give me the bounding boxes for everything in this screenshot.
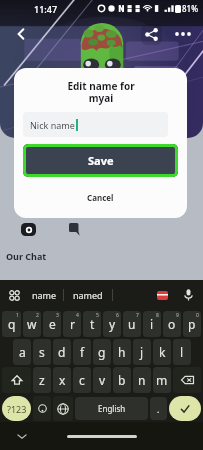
- button[interactable]: .: [150, 397, 167, 420]
- button[interactable]: Hide keyboard: [14, 428, 30, 444]
- button[interactable]: Change language: [53, 396, 73, 421]
- staticText: w: [27, 316, 37, 332]
- button[interactable]: f: [73, 339, 91, 365]
- button[interactable]: k: [153, 339, 171, 365]
- staticText: 7: [136, 312, 139, 319]
- staticText: 6: [116, 312, 119, 319]
- button[interactable]: g: [93, 339, 111, 365]
- staticText: e: [49, 316, 56, 332]
- staticText: Edit name for myai: [67, 79, 135, 105]
- staticText: 2: [36, 312, 39, 319]
- staticText: c: [79, 372, 85, 388]
- button[interactable]: Enter: [169, 396, 201, 421]
- staticText: Save: [88, 153, 114, 168]
- staticText: x: [59, 372, 66, 388]
- button[interactable]: n: [133, 367, 151, 393]
- staticText: i: [150, 316, 154, 332]
- staticText: p: [188, 316, 196, 332]
- button[interactable]: named: [64, 280, 112, 310]
- staticText: b: [118, 372, 126, 388]
- staticText: n: [138, 372, 146, 388]
- staticText: f: [80, 344, 85, 360]
- button[interactable]: English: [75, 397, 148, 420]
- button[interactable]: l: [173, 339, 191, 365]
- button[interactable]: Nick name: [23, 112, 168, 137]
- staticText: ?123: [7, 403, 27, 415]
- staticText: d: [58, 344, 66, 360]
- button[interactable]: z: [33, 367, 51, 393]
- staticText: a: [19, 344, 26, 360]
- button[interactable]: y: [103, 311, 121, 337]
- button[interactable]: Voice input: [177, 280, 199, 310]
- button[interactable]: j: [133, 339, 151, 365]
- button[interactable]: d: [53, 339, 71, 365]
- staticText: m: [156, 372, 168, 388]
- button[interactable]: o: [163, 311, 181, 337]
- button[interactable]: x: [53, 367, 71, 393]
- button[interactable]: ?123: [2, 396, 31, 421]
- staticText: y: [109, 316, 116, 332]
- staticText: Nick name: [30, 119, 75, 131]
- staticText: k: [159, 344, 166, 360]
- staticText: 81%: [182, 3, 198, 14]
- staticText: v: [99, 372, 106, 388]
- staticText: 9: [176, 312, 179, 319]
- staticText: 8: [156, 312, 159, 319]
- button[interactable]: Back: [9, 22, 33, 46]
- staticText: r: [70, 316, 75, 332]
- staticText: named: [73, 289, 103, 301]
- button[interactable]: Backspace: [173, 367, 201, 393]
- button[interactable]: Toolbar: [4, 285, 24, 305]
- staticText: l: [180, 344, 184, 360]
- staticText: j: [140, 344, 144, 360]
- button[interactable]: Stickers: [147, 280, 177, 310]
- button[interactable]: Shift: [2, 367, 31, 393]
- button[interactable]: e: [43, 311, 61, 337]
- button[interactable]: Camera: [21, 223, 36, 236]
- button[interactable]: Cancel: [14, 186, 187, 208]
- button[interactable]: i: [143, 311, 161, 337]
- button[interactable]: c: [73, 367, 91, 393]
- button[interactable]: Chat: [69, 223, 80, 236]
- button[interactable]: More options: [172, 23, 194, 45]
- staticText: 11:47: [34, 3, 58, 15]
- staticText: .: [157, 403, 160, 415]
- staticText: h: [118, 344, 126, 360]
- staticText: z: [39, 372, 45, 388]
- staticText: s: [39, 344, 45, 360]
- staticText: t: [90, 316, 95, 332]
- button[interactable]: p: [183, 311, 201, 337]
- staticText: Our Chat: [6, 250, 47, 262]
- button[interactable]: s: [33, 339, 51, 365]
- button[interactable]: m: [153, 367, 171, 393]
- button[interactable]: a: [13, 339, 31, 365]
- staticText: 1: [16, 312, 19, 319]
- button[interactable]: Emoji: [33, 396, 51, 421]
- button[interactable]: h: [113, 339, 131, 365]
- staticText: 5: [96, 312, 99, 319]
- button[interactable]: q: [2, 311, 21, 337]
- staticText: o: [168, 316, 176, 332]
- staticText: q: [8, 316, 16, 332]
- staticText: 3: [56, 312, 59, 319]
- button[interactable]: w: [23, 311, 41, 337]
- staticText: English: [98, 403, 126, 414]
- button[interactable]: r: [63, 311, 81, 337]
- staticText: u: [128, 316, 136, 332]
- staticText: 0: [196, 312, 199, 319]
- button[interactable]: v: [93, 367, 111, 393]
- staticText: g: [98, 344, 106, 360]
- button[interactable]: b: [113, 367, 131, 393]
- staticText: name: [32, 289, 57, 301]
- button[interactable]: Save: [23, 144, 178, 177]
- button[interactable]: t: [83, 311, 101, 337]
- button[interactable]: name: [25, 280, 63, 310]
- staticText: Cancel: [87, 192, 114, 203]
- staticText: 4: [76, 312, 79, 319]
- button[interactable]: Share: [141, 24, 162, 45]
- button[interactable]: u: [123, 311, 141, 337]
